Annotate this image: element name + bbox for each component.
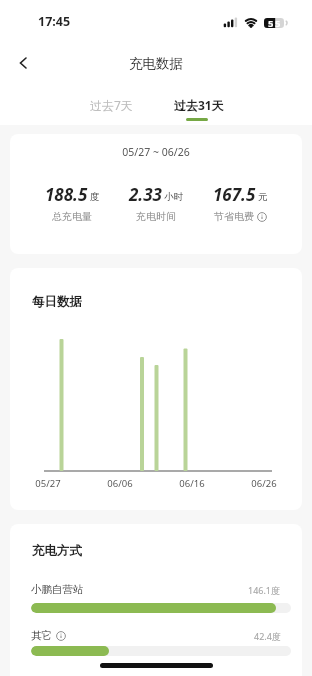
staticText: 5: [275, 17, 281, 30]
staticText: 146.1度: [248, 584, 281, 596]
staticText: 元: [258, 191, 268, 203]
staticText: 小鹏自营站: [31, 583, 84, 596]
staticText: 总充电量: [52, 210, 92, 223]
staticText: 小时: [164, 191, 183, 203]
staticText: 06/16: [170, 477, 214, 490]
staticText: 06/06: [98, 477, 142, 490]
button[interactable]: [257, 212, 267, 222]
staticText: 188.5: [45, 183, 88, 206]
staticText: 05/27 ~ 06/26: [10, 145, 302, 159]
staticText: 充电数据: [0, 55, 312, 72]
button[interactable]: [8, 47, 40, 79]
staticText: 5: [268, 17, 274, 30]
button[interactable]: [56, 631, 66, 641]
staticText: 过去31天: [174, 97, 224, 113]
staticText: 05/27: [26, 477, 70, 490]
staticText: 17:45: [38, 13, 71, 30]
staticText: 42.4度: [254, 630, 281, 642]
staticText: 节省电费: [214, 210, 254, 223]
staticText: 度: [90, 191, 100, 203]
button[interactable]: 过去7天: [78, 90, 144, 120]
staticText: 2.33: [129, 183, 162, 206]
staticText: 167.5: [213, 183, 256, 206]
staticText: 06/26: [242, 477, 286, 490]
staticText: 充电方式: [32, 543, 82, 559]
staticText: 每日数据: [32, 294, 82, 310]
button[interactable]: 过去31天: [165, 90, 232, 120]
staticText: 充电时间: [136, 210, 176, 223]
staticText: 其它: [31, 629, 52, 642]
staticText: 过去7天: [90, 97, 133, 113]
